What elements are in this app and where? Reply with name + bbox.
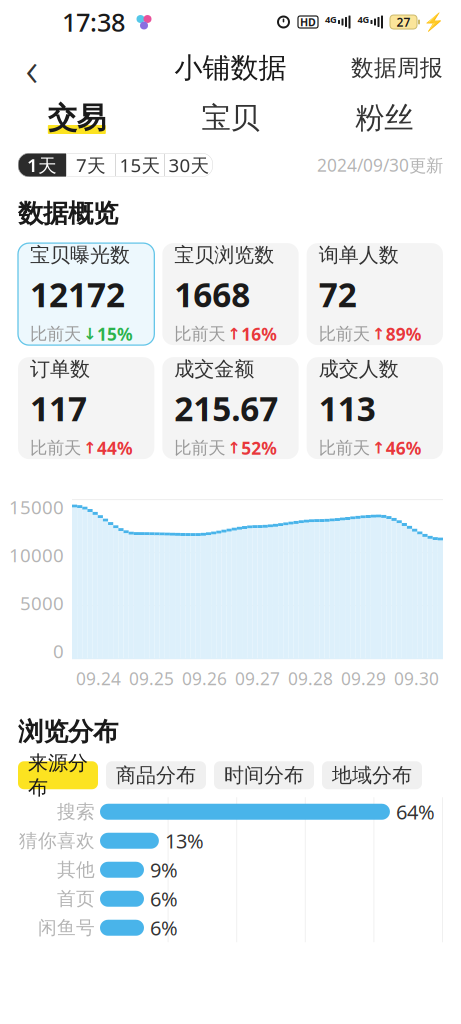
staticText: 宝贝 [201,100,259,136]
staticText: 12172 [30,272,125,317]
button[interactable]: 数据周报 [341,45,453,91]
staticText: 订单数 [30,357,90,381]
staticText: ↑ [227,439,240,457]
staticText: HD [300,15,316,29]
button[interactable]: 15天 [116,153,164,177]
staticText: 闲鱼号 [38,916,95,939]
staticText: 地域分布 [332,763,412,788]
staticText: 交易 [48,100,106,136]
staticText: 30天 [168,153,209,177]
staticText: 搜索 [57,800,95,823]
staticText: 113 [319,386,376,431]
staticText: 首页 [57,887,95,910]
button[interactable]: 宝贝浏览数 [162,243,299,345]
staticText: 46% [386,436,422,459]
staticText: ‹ [25,36,38,100]
staticText: 6% [150,914,178,941]
staticText: 0 [53,639,64,663]
staticText: 成交金额 [174,357,254,381]
staticText: 64% [396,798,435,825]
staticText: 15天 [119,153,160,177]
staticText: 89% [386,322,422,345]
staticText: 时间分布 [224,763,304,788]
staticText: 比前天 [174,437,225,459]
staticText: ↑ [372,439,385,457]
button[interactable]: 询单人数 [307,243,443,345]
button[interactable]: 成交人数 [307,357,443,459]
staticText: 13% [165,827,204,854]
staticText: 09.24 [76,667,121,690]
staticText: 215.67 [174,386,278,431]
staticText: 其他 [57,858,95,881]
staticText: 小铺数据 [174,51,286,85]
button[interactable]: 订单数 [18,357,154,459]
staticText: 比前天 [30,437,81,459]
staticText: 2024/09/30更新 [317,153,443,176]
staticText: 117 [30,386,87,431]
staticText: 比前天 [174,323,225,345]
staticText: 27 [396,14,410,30]
staticText: 商品分布 [116,763,196,788]
staticText: 44% [97,436,133,459]
staticText: 猜你喜欢 [19,829,95,852]
staticText: 09.26 [182,667,227,690]
staticText: ↑ [83,439,96,457]
staticText: 4G [357,13,369,26]
staticText: 09.30 [394,667,439,690]
button[interactable]: 7天 [67,153,115,177]
staticText: 9% [150,856,178,883]
staticText: 询单人数 [319,243,399,267]
staticText: 5000 [20,591,64,615]
staticText: 宝贝浏览数 [174,243,274,267]
staticText: 52% [241,436,277,459]
button[interactable]: 宝贝曝光数 [18,243,154,345]
button[interactable]: 宝贝 [154,92,307,144]
button[interactable]: 成交金额 [162,357,299,459]
staticText: 浏览分布 [18,716,118,747]
staticText: ↑ [227,325,240,343]
staticText: 09.28 [288,667,333,690]
staticText: 4G [325,13,337,26]
staticText: 6% [150,885,178,912]
button[interactable]: 30天 [165,153,213,177]
staticText: 10000 [9,543,64,567]
staticText: 比前天 [319,323,370,345]
staticText: 09.27 [235,667,280,690]
staticText: 09.29 [341,667,386,690]
staticText: 粉丝 [355,100,413,136]
button[interactable]: Back [8,45,56,91]
button[interactable]: 来源分布 [18,761,98,789]
staticText: 来源分布 [28,751,88,800]
button[interactable]: 商品分布 [106,761,206,789]
staticText: 比前天 [319,437,370,459]
staticText: 宝贝曝光数 [30,243,130,267]
staticText: 1668 [174,272,250,317]
staticText: 72 [319,272,357,317]
staticText: 15000 [9,495,64,519]
staticText: 15% [97,322,133,345]
staticText: 17:38 [62,5,125,39]
staticText: 数据周报 [351,54,443,82]
staticText: 1天 [27,153,57,177]
button[interactable]: 时间分布 [214,761,314,789]
button[interactable]: 交易 [0,92,154,144]
staticText: ⚡ [423,12,445,32]
button[interactable]: 粉丝 [307,92,461,144]
staticText: 数据概览 [18,198,118,229]
staticText: 比前天 [30,323,81,345]
staticText: ↑ [372,325,385,343]
button[interactable]: 1天 [18,153,66,177]
staticText: 16% [241,322,277,345]
staticText: 09.25 [129,667,174,690]
staticText: ↓ [83,325,96,343]
staticText: 7天 [76,153,106,177]
button[interactable]: 地域分布 [322,761,422,789]
staticText: 成交人数 [319,357,399,381]
